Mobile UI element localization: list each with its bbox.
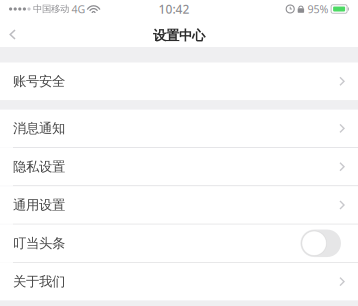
staticText: 隐私设置 [13,158,65,175]
staticText: 叮当头条 [13,235,65,251]
staticText: 95% [308,2,329,16]
staticText: 10:42 [158,1,189,17]
button[interactable]: 通用设置 [0,186,358,224]
button[interactable]: 叮当头条 [0,224,358,262]
staticText: 设置中心 [153,27,205,44]
button[interactable]: 关于我们 [0,263,358,300]
staticText: 4G [72,2,86,16]
staticText: 消息通知 [13,120,65,137]
button[interactable]: 账号安全 [0,62,358,100]
staticText: 账号安全 [13,73,65,89]
staticText: 通用设置 [13,197,65,213]
staticText: 关于我们 [13,273,65,290]
button[interactable]: 消息通知 [0,110,358,147]
staticText: 中国移动 [33,3,69,15]
button[interactable]: Back [0,18,25,47]
button[interactable]: 隐私设置 [0,148,358,185]
